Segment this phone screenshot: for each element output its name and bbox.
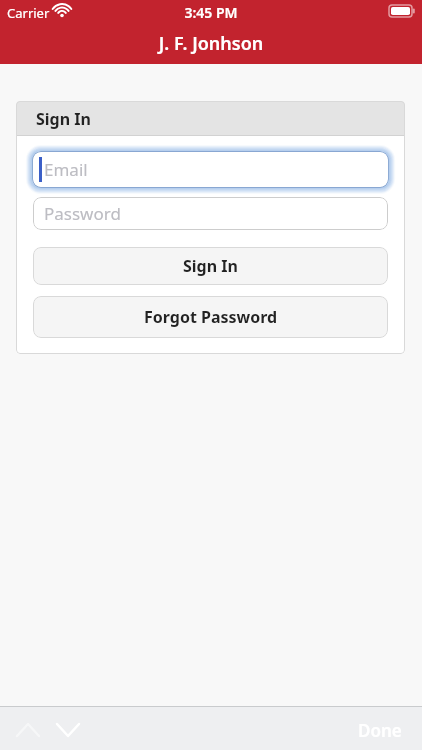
staticText: J. F. Jonhson [0,31,422,56]
staticText: Email [44,158,88,181]
staticText: 3:45 PM [0,3,422,22]
staticText: Password [44,202,121,225]
staticText: Carrier [7,4,50,22]
staticText: Sign In [36,108,91,130]
staticText: Done [358,719,402,742]
staticText: Sign In [183,255,238,277]
staticText: Forgot Password [144,306,278,328]
